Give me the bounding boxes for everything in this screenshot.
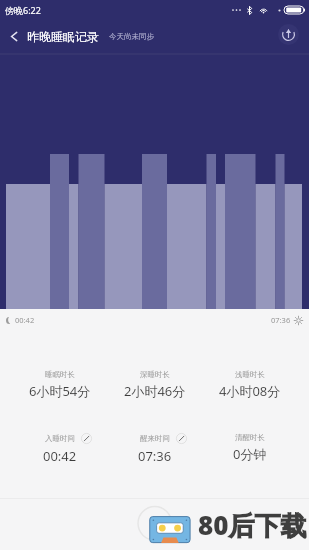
- staticText: 睡眠时长: [45, 370, 75, 379]
- staticText: 昨晚睡眠记录: [27, 29, 99, 44]
- staticText: 浅睡时长: [235, 370, 265, 379]
- button[interactable]: 醒来时间: [107, 433, 202, 465]
- staticText: 4小时08分: [219, 382, 281, 400]
- staticText: 入睡时间: [45, 434, 75, 443]
- staticText: 清醒时长: [235, 433, 265, 442]
- button[interactable]: Sync: [276, 22, 300, 46]
- staticText: 2小时46分: [124, 382, 186, 400]
- button[interactable]: 入睡时间: [12, 433, 107, 465]
- staticText: 00:42: [15, 315, 35, 325]
- button[interactable]: 清醒时长: [202, 433, 297, 463]
- staticText: 00:42: [43, 447, 77, 465]
- staticText: 0分钟: [233, 445, 267, 463]
- staticText: 傍晚6:22: [5, 4, 41, 16]
- staticText: 6小时54分: [29, 382, 91, 400]
- button[interactable]: 浅睡时长: [202, 370, 297, 400]
- staticText: 80后下载: [198, 507, 307, 543]
- button[interactable]: Back: [1, 20, 27, 53]
- staticText: 深睡时长: [140, 370, 170, 379]
- staticText: 07:36: [138, 447, 172, 465]
- button[interactable]: 睡眠时长: [12, 370, 107, 400]
- staticText: 07:36: [271, 315, 291, 325]
- button[interactable]: 深睡时长: [107, 370, 202, 400]
- staticText: 今天尚未同步: [109, 32, 154, 41]
- staticText: 醒来时间: [140, 434, 170, 443]
